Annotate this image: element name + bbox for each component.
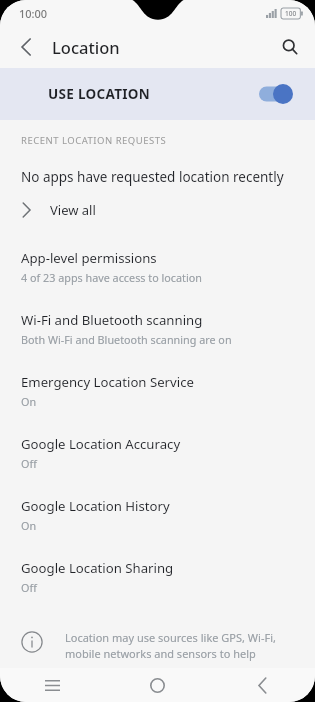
button[interactable]: App-level permissions <box>0 240 315 302</box>
staticText: USE LOCATION <box>48 85 151 103</box>
staticText: View all <box>50 201 96 219</box>
staticText: Location <box>52 36 120 58</box>
button[interactable]: Location may use sources like GPS, Wi-Fi… <box>0 626 315 668</box>
staticText: Google Location Accuracy <box>21 435 181 453</box>
button[interactable]: Google Location Sharing <box>0 550 315 612</box>
staticText: Google Location History <box>21 497 170 515</box>
staticText: App-level permissions <box>21 249 157 267</box>
button[interactable]: Google Location Accuracy <box>0 426 315 488</box>
staticText: Off <box>21 456 37 471</box>
staticText: On <box>21 394 37 409</box>
staticText: Google Location Sharing <box>21 559 174 577</box>
staticText: Emergency Location Service <box>21 373 194 391</box>
button[interactable]: Search <box>272 29 308 65</box>
staticText: Location may use sources like GPS, Wi-Fi… <box>65 630 301 661</box>
staticText: Wi-Fi and Bluetooth scanning <box>21 311 203 329</box>
staticText: 4 of 23 apps have access to location <box>21 270 202 285</box>
staticText: No apps have requested location recently <box>21 168 284 186</box>
staticText: Off <box>21 580 37 595</box>
staticText: Both Wi-Fi and Bluetooth scanning are on <box>21 332 232 347</box>
button[interactable]: Recent apps <box>0 668 105 702</box>
button[interactable]: Emergency Location Service <box>0 364 315 426</box>
button[interactable]: USE LOCATION <box>0 68 315 120</box>
button[interactable]: Back <box>210 668 315 702</box>
button[interactable]: Wi-Fi and Bluetooth scanning <box>0 302 315 364</box>
staticText: 10:00 <box>19 6 48 21</box>
button[interactable]: View all <box>0 186 315 234</box>
button[interactable]: Back <box>8 29 44 65</box>
button[interactable]: Google Location History <box>0 488 315 550</box>
staticText: On <box>21 518 37 533</box>
staticText: RECENT LOCATION REQUESTS <box>21 134 167 147</box>
staticText: 100 <box>285 9 297 18</box>
button[interactable]: Home <box>105 668 210 702</box>
